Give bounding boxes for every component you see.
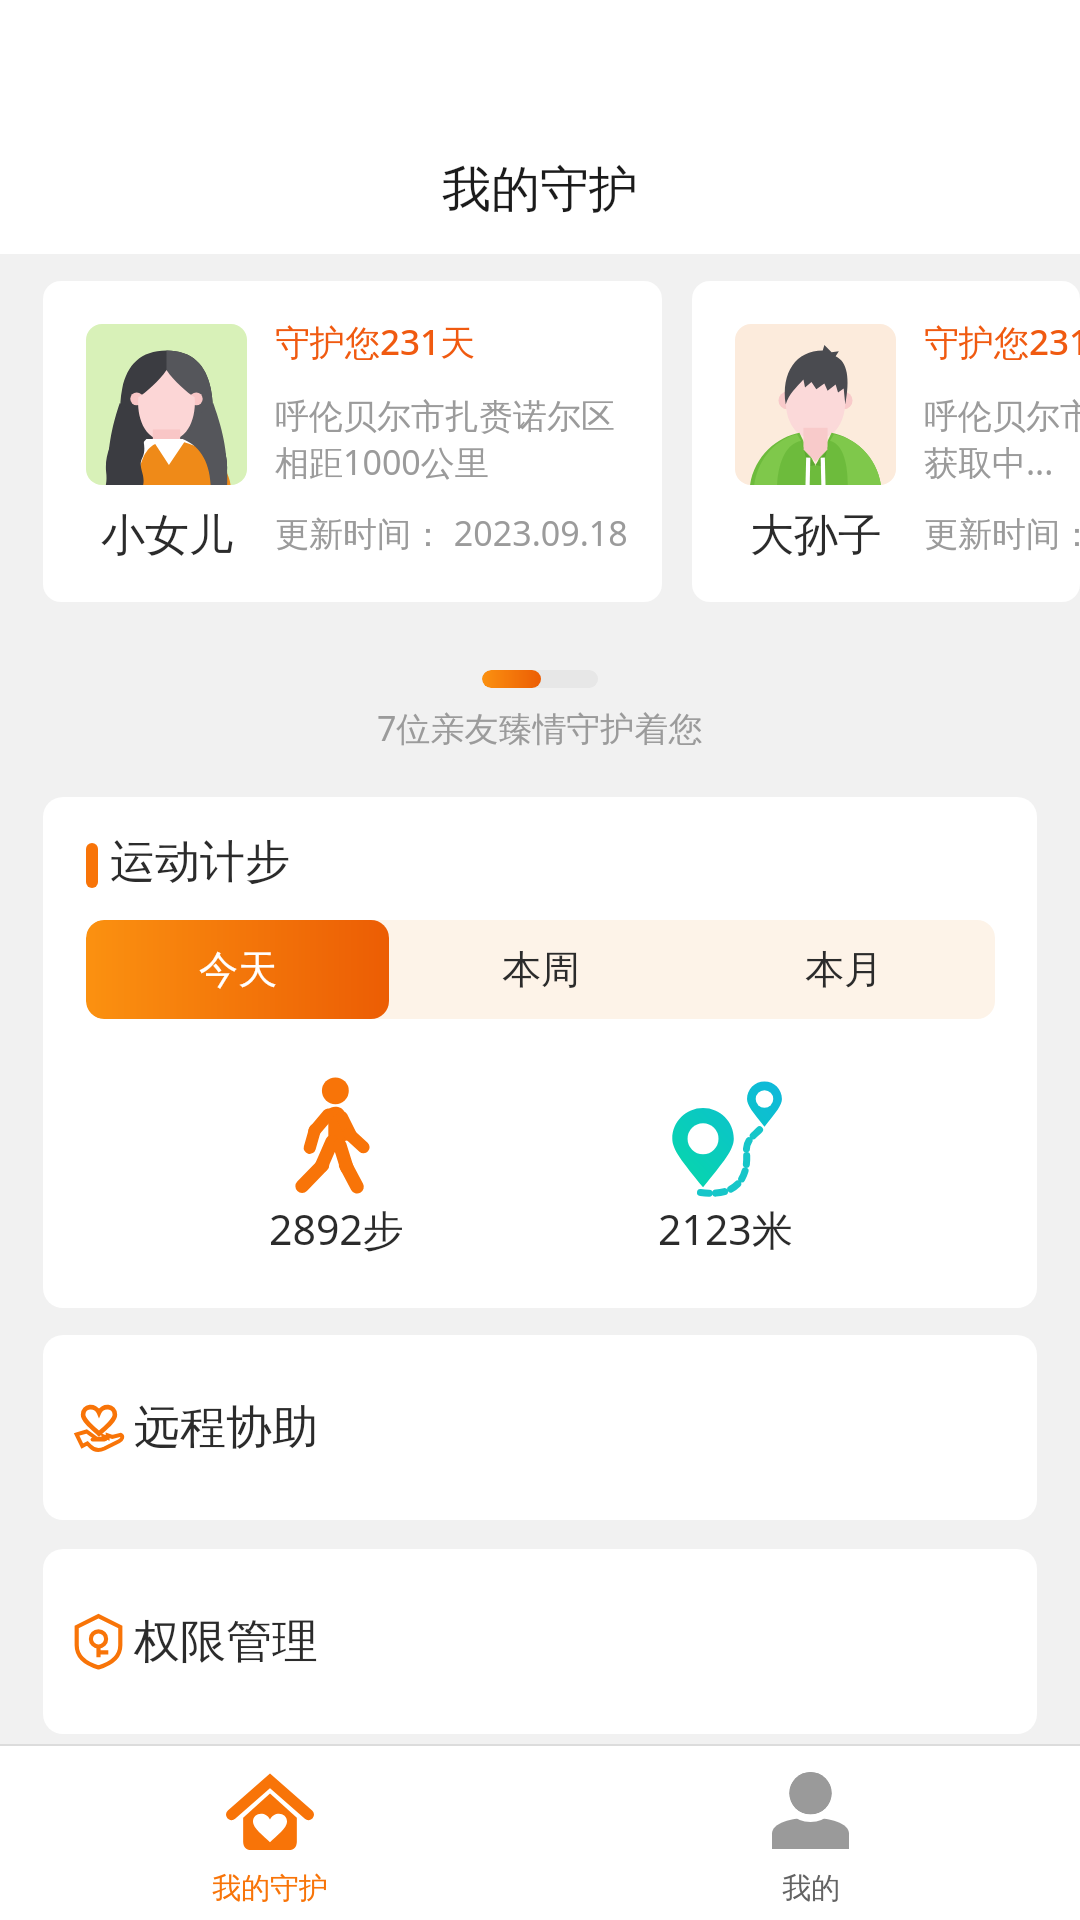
staticText: 7位亲友臻情守护着您: [377, 705, 703, 751]
staticText: 本周: [502, 945, 580, 994]
staticText: 大孙子: [750, 508, 882, 563]
staticText: 获取中...: [924, 439, 1054, 485]
staticText: 我的守护: [212, 1870, 328, 1907]
staticText: 相距1000公里: [275, 439, 489, 485]
button[interactable]: 权限管理: [43, 1549, 1037, 1734]
staticText: 我的守护: [442, 159, 638, 221]
staticText: 2892步: [269, 1201, 404, 1257]
button[interactable]: 我的: [540, 1746, 1080, 1920]
staticText: 呼伦贝尔市扎赉诺尔区: [275, 395, 615, 438]
staticText: 守护您231天: [275, 318, 476, 366]
staticText: 权限管理: [134, 1613, 318, 1671]
button[interactable]: 今天: [86, 920, 389, 1019]
staticText: 呼伦贝尔市扎赉诺尔区: [924, 395, 1080, 438]
staticText: 2123米: [658, 1201, 793, 1257]
button[interactable]: 本月: [692, 920, 995, 1019]
button[interactable]: 大孙子: [692, 281, 1080, 602]
staticText: 本月: [805, 945, 883, 994]
button[interactable]: 我的守护: [0, 1746, 540, 1920]
staticText: 小女儿: [101, 508, 233, 563]
staticText: 远程协助: [134, 1399, 318, 1457]
staticText: 今天: [199, 945, 277, 994]
button[interactable]: 远程协助: [43, 1335, 1037, 1520]
staticText: 守护您231天: [924, 318, 1080, 366]
staticText: 运动计步: [110, 834, 290, 891]
button[interactable]: Page indicator: [482, 670, 598, 688]
staticText: 我的: [782, 1870, 840, 1907]
staticText: 更新时间： 2023.09.18: [275, 510, 628, 556]
button[interactable]: 小女儿: [43, 281, 662, 602]
button[interactable]: 本周: [389, 920, 692, 1019]
staticText: 更新时间： 2023.09.18: [924, 510, 1080, 556]
